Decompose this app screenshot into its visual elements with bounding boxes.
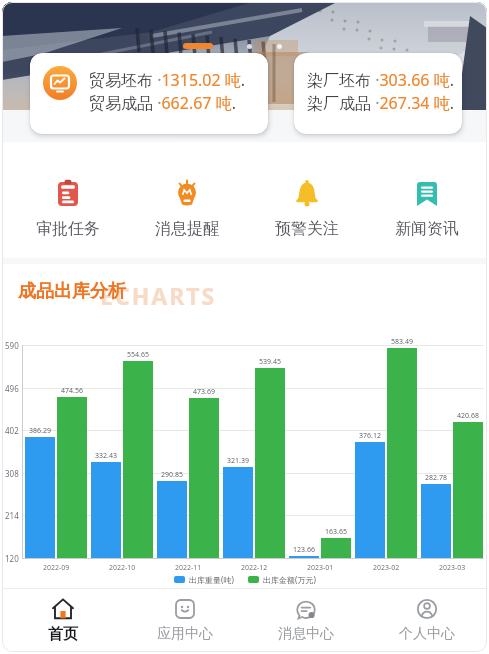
staticText: 473.69 [193, 387, 215, 397]
staticText: 2022-11 [175, 563, 202, 573]
staticText: 583.49 [391, 337, 413, 347]
staticText: 554.65 [127, 350, 149, 360]
staticText: 2022-12 [241, 563, 268, 573]
staticText: 590 [5, 340, 19, 351]
staticText: 2022-09 [43, 563, 70, 573]
button[interactable]: 个人中心 [366, 596, 487, 643]
staticText: 消息中心 [278, 625, 334, 643]
staticText: 402 [5, 425, 19, 436]
staticText: 332.43 [95, 451, 117, 461]
button[interactable]: 消息中心 [245, 596, 366, 643]
staticText: 2023-01 [307, 563, 334, 573]
button[interactable]: 贸易坯布 ·1315.02 吨. [30, 53, 268, 134]
staticText: 163.65 [325, 527, 347, 537]
button[interactable]: 首页 [2, 596, 124, 644]
staticText: 预警关注 [275, 219, 339, 239]
staticText: 染厂成品 ·267.34 吨. [307, 92, 454, 114]
button[interactable]: 消息提醒 [127, 178, 247, 239]
staticText: 贸易坯布 ·1315.02 吨. [89, 69, 246, 91]
staticText: 2022-10 [109, 563, 136, 573]
staticText: 496 [5, 383, 19, 394]
button[interactable]: 染厂坯布 ·303.66 吨. [294, 53, 462, 134]
button[interactable]: 新闻资讯 [367, 178, 487, 239]
staticText: 321.39 [227, 456, 249, 466]
button[interactable]: 审批任务 [8, 178, 127, 239]
staticText: 123.66 [293, 545, 315, 555]
staticText: 成品出库分析 [18, 280, 126, 303]
staticText: 386.29 [29, 426, 51, 436]
staticText: 308 [5, 468, 19, 479]
staticText: 新闻资讯 [395, 219, 459, 239]
staticText: 474.56 [61, 386, 83, 396]
staticText: 120 [5, 553, 19, 564]
staticText: ECHARTS [100, 280, 217, 311]
staticText: 539.45 [259, 357, 281, 367]
button[interactable]: 应用中心 [124, 596, 245, 643]
staticText: 2023-03 [439, 563, 466, 573]
staticText: 214 [5, 510, 19, 521]
staticText: 2023-02 [373, 563, 400, 573]
staticText: 染厂坯布 ·303.66 吨. [307, 69, 454, 91]
staticText: 消息提醒 [155, 219, 219, 239]
staticText: 376.12 [359, 431, 381, 441]
button[interactable]: 预警关注 [247, 178, 367, 239]
staticText: 审批任务 [36, 219, 100, 239]
staticText: 290.85 [161, 470, 183, 480]
staticText: 个人中心 [399, 625, 455, 643]
staticText: 应用中心 [157, 625, 213, 643]
staticText: 282.78 [425, 473, 447, 483]
staticText: 420.68 [457, 411, 479, 421]
staticText: 贸易成品 ·662.67 吨. [89, 92, 236, 114]
staticText: 首页 [48, 625, 78, 644]
staticText: 出库重量(吨) [189, 574, 234, 585]
staticText: 出库金额(万元) [263, 574, 316, 585]
